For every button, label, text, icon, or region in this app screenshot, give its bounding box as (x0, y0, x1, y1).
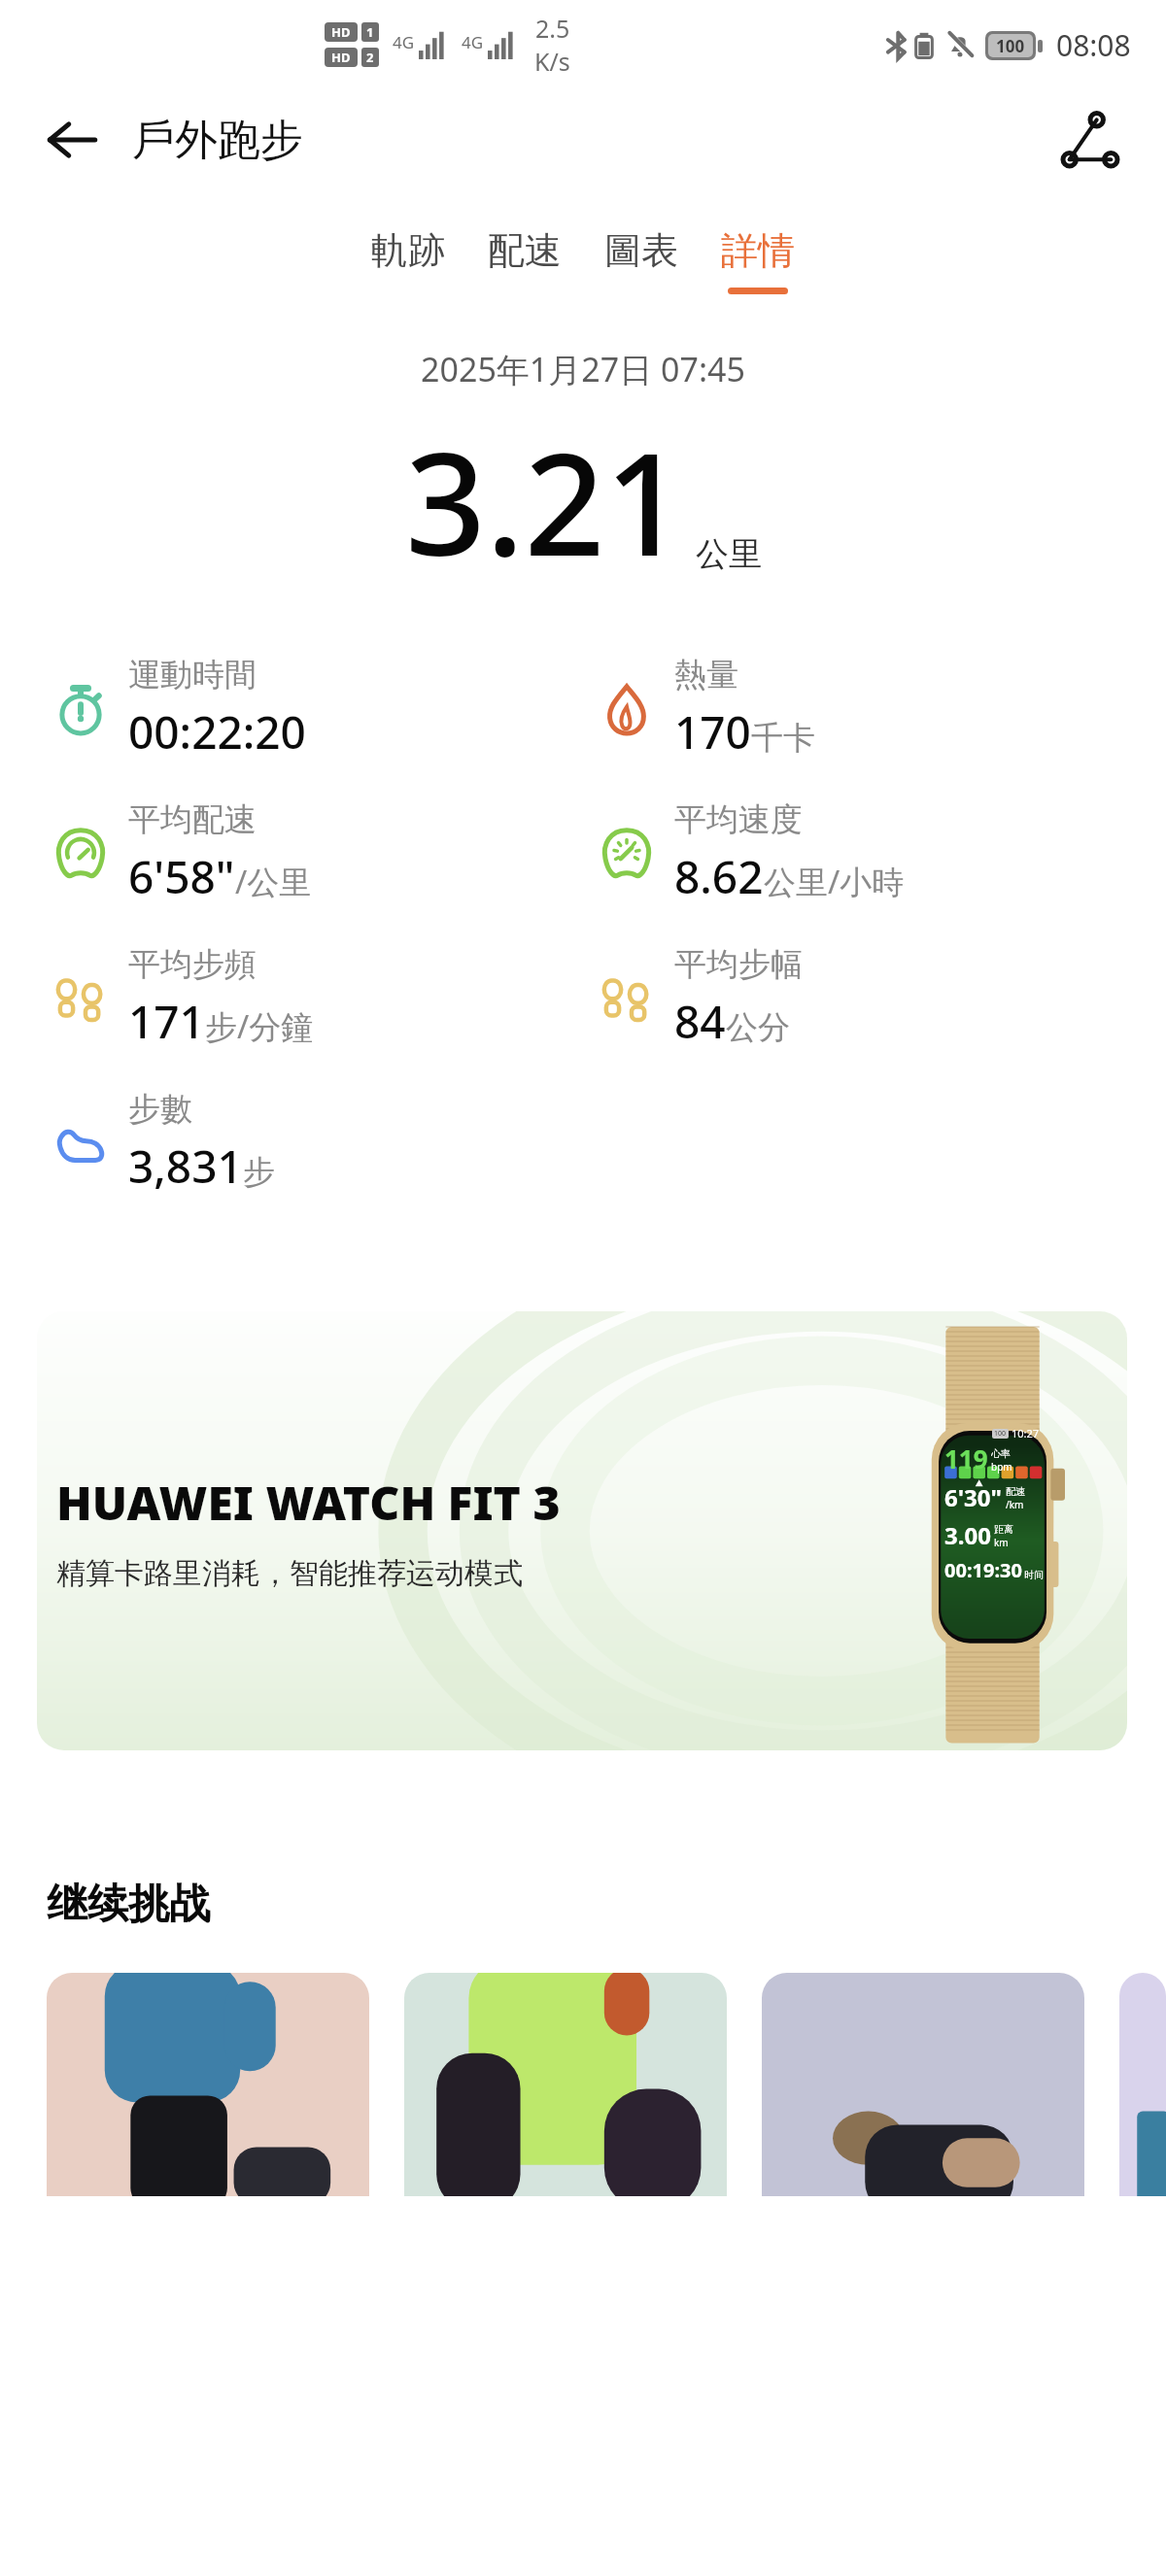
staticText: 平均配速 (128, 799, 257, 840)
staticText: 3.21 (405, 405, 686, 596)
staticText: 08:08 (1056, 25, 1131, 65)
staticText: 詳情 (721, 227, 795, 274)
staticText: 119 (944, 1441, 988, 1475)
staticText: /km (1006, 1498, 1024, 1511)
staticText: 2 (366, 49, 374, 66)
button[interactable]: 步數 (52, 1089, 275, 1197)
staticText: 熱量 (674, 655, 738, 695)
staticText: 100 (994, 1429, 1007, 1439)
staticText: 運動時間 (128, 655, 257, 695)
staticText: 84 (674, 991, 726, 1052)
button[interactable]: 平均步幅 (599, 944, 803, 1052)
staticText: 6'30" (944, 1481, 1003, 1513)
staticText: 公分 (726, 1007, 790, 1048)
button[interactable]: 配速 (480, 221, 569, 300)
button[interactable]: 平均配速 (52, 799, 312, 907)
button[interactable]: 平均速度 (599, 799, 905, 907)
staticText: 8.62 (674, 846, 764, 907)
staticText: /公里 (235, 860, 312, 903)
staticText: 公里/小時 (764, 860, 905, 903)
staticText: 100 (996, 35, 1025, 57)
staticText: 10:27 (1012, 1426, 1040, 1441)
button[interactable]: 平均步頻 (52, 944, 314, 1052)
button[interactable]: Share (1053, 103, 1127, 177)
button[interactable] (1119, 1973, 1166, 2196)
staticText: 171 (128, 991, 205, 1052)
button[interactable]: 軌跡 (363, 221, 453, 300)
staticText: 继续挑战 (47, 1879, 210, 1930)
staticText: 距离 (994, 1523, 1013, 1536)
staticText: 步 (243, 1152, 275, 1193)
staticText: 精算卡路里消耗，智能推荐运动模式 (56, 1555, 523, 1592)
button[interactable]: 圖表 (597, 221, 686, 300)
button[interactable]: Back (35, 103, 109, 177)
staticText: 2.5 (535, 12, 570, 45)
staticText: 平均步幅 (674, 944, 803, 985)
staticText: 平均速度 (674, 799, 803, 840)
staticText: 平均步頻 (128, 944, 257, 985)
staticText: 3.00 (944, 1519, 991, 1551)
button[interactable]: 運動時間 (52, 655, 306, 763)
staticText: km (994, 1536, 1009, 1549)
staticText: 3,831 (128, 1135, 243, 1197)
staticText: 配速 (488, 227, 562, 274)
staticText: 千卡 (751, 718, 815, 759)
staticText: 2025年1月27日 07:45 (0, 347, 1166, 391)
button[interactable] (404, 1973, 727, 2196)
staticText: 配速 (1006, 1485, 1025, 1498)
staticText: HUAWEI WATCH FIT 3 (56, 1471, 561, 1534)
button[interactable]: HUAWEI WATCH FIT 3 (37, 1311, 1127, 1750)
staticText: 00:22:20 (128, 701, 306, 763)
staticText: 步數 (128, 1089, 192, 1130)
staticText: 1 (366, 23, 374, 41)
staticText: 6'58" (128, 846, 235, 907)
staticText: 心率 (991, 1447, 1011, 1460)
staticText: 軌跡 (371, 227, 445, 274)
staticText: 戶外跑步 (132, 114, 303, 167)
button[interactable] (762, 1973, 1084, 2196)
staticText: 圖表 (604, 227, 678, 274)
staticText: 00:19:30 (944, 1557, 1022, 1583)
staticText: HD (331, 23, 351, 41)
button[interactable]: 熱量 (599, 655, 815, 763)
staticText: HD (331, 49, 351, 66)
staticText: 公里 (696, 533, 762, 575)
staticText: 步/分鐘 (205, 1004, 314, 1048)
button[interactable]: 詳情 (713, 221, 803, 300)
staticText: 4G (393, 31, 415, 53)
staticText: bpm (991, 1460, 1012, 1474)
staticText: 时间 (1024, 1569, 1044, 1581)
staticText: K/s (534, 45, 570, 78)
staticText: 4G (462, 31, 484, 53)
staticText: 170 (674, 701, 751, 763)
button[interactable] (47, 1973, 369, 2196)
